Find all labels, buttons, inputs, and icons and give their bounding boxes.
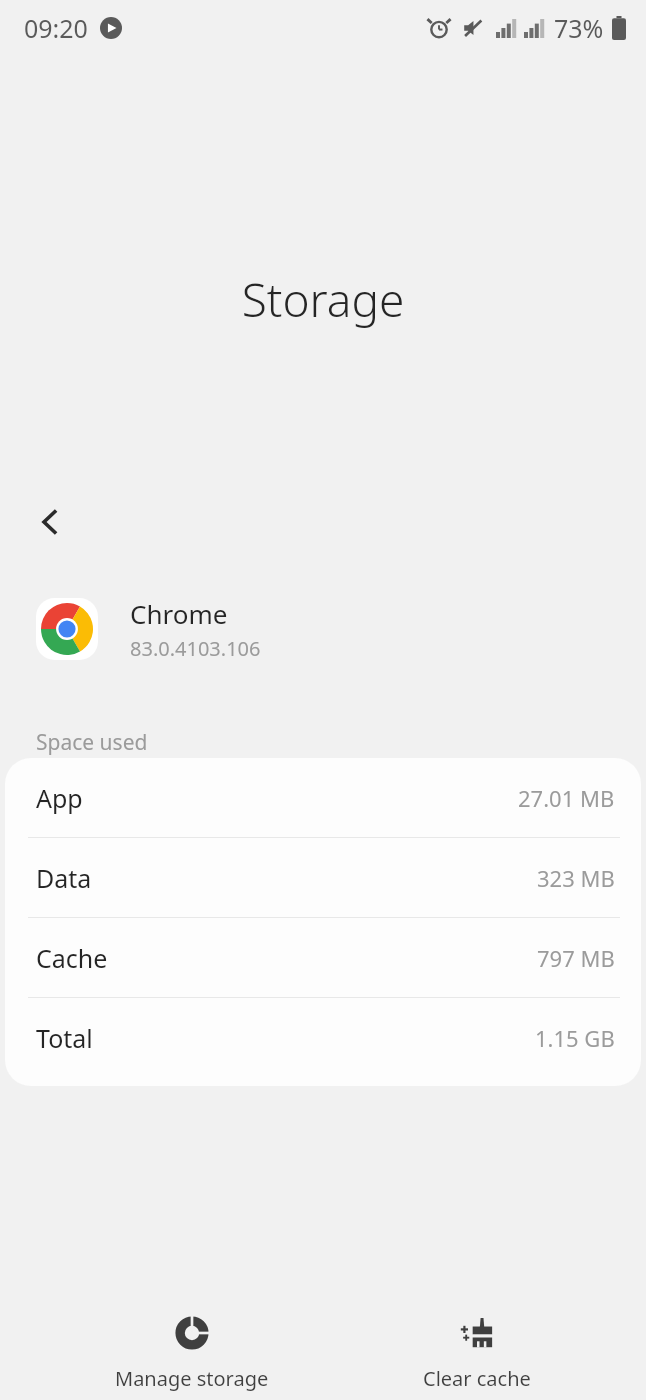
button[interactable]: Clear cache	[383, 1305, 571, 1400]
button[interactable]: Data	[5, 838, 641, 918]
staticText: 1.15 GB	[535, 1023, 615, 1053]
staticText: Clear cache	[423, 1365, 531, 1392]
button[interactable]: App	[5, 758, 641, 838]
staticText: 09:20	[24, 11, 88, 45]
button[interactable]: Cache	[5, 918, 641, 998]
staticText: 83.0.4103.106	[130, 635, 261, 662]
staticText: Manage storage	[115, 1365, 269, 1392]
staticText: 797 MB	[537, 943, 615, 973]
staticText: Cache	[36, 941, 108, 975]
staticText: 73%	[554, 11, 604, 45]
staticText: App	[36, 781, 83, 815]
button[interactable]: Back	[18, 490, 82, 554]
staticText: Data	[36, 861, 92, 895]
staticText: Chrome	[130, 596, 228, 631]
button[interactable]: Total	[5, 998, 641, 1078]
staticText: Storage	[0, 268, 646, 331]
staticText: 323 MB	[537, 863, 615, 893]
staticText: Total	[36, 1021, 93, 1055]
staticText: Space used	[36, 728, 148, 757]
staticText: 27.01 MB	[518, 783, 615, 813]
button[interactable]: Manage storage	[75, 1305, 309, 1400]
